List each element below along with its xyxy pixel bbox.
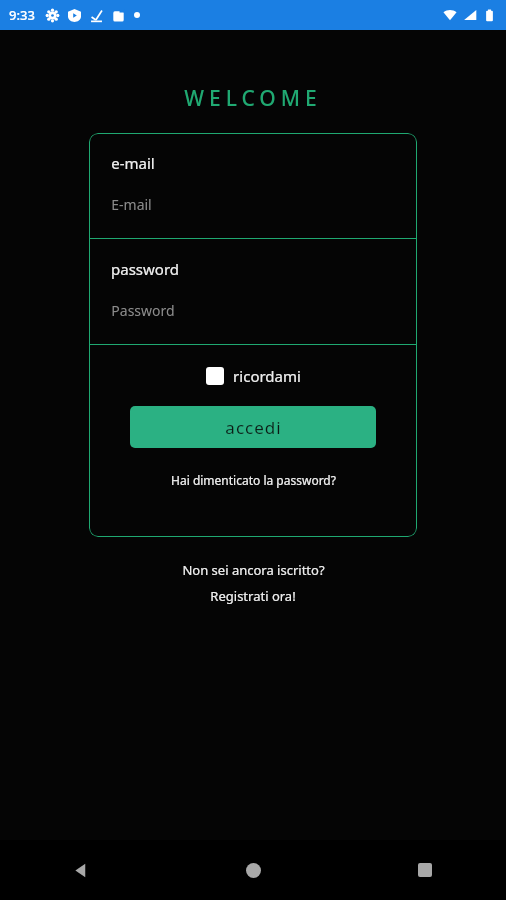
button[interactable]: e-mail bbox=[89, 133, 417, 238]
staticText: ricordami bbox=[233, 366, 301, 386]
staticText: WELCOME bbox=[184, 84, 322, 113]
button[interactable]: password bbox=[89, 239, 417, 344]
button[interactable]: Recent apps bbox=[402, 847, 448, 893]
staticText: accedi bbox=[225, 416, 282, 439]
button[interactable]: Non sei ancora iscritto? bbox=[174, 559, 333, 581]
staticText: password bbox=[111, 259, 179, 279]
button[interactable]: Back bbox=[58, 847, 104, 893]
staticText: 9:33 bbox=[9, 6, 35, 24]
staticText: e-mail bbox=[111, 153, 155, 173]
button[interactable]: Registrati ora! bbox=[202, 585, 304, 607]
button[interactable]: Home bbox=[230, 847, 276, 893]
button[interactable]: accedi bbox=[130, 406, 376, 448]
button[interactable]: ricordami bbox=[200, 362, 307, 390]
staticText: Password bbox=[111, 301, 175, 320]
staticText: E-mail bbox=[111, 195, 152, 214]
button[interactable]: Hai dimenticato la password? bbox=[163, 469, 344, 491]
